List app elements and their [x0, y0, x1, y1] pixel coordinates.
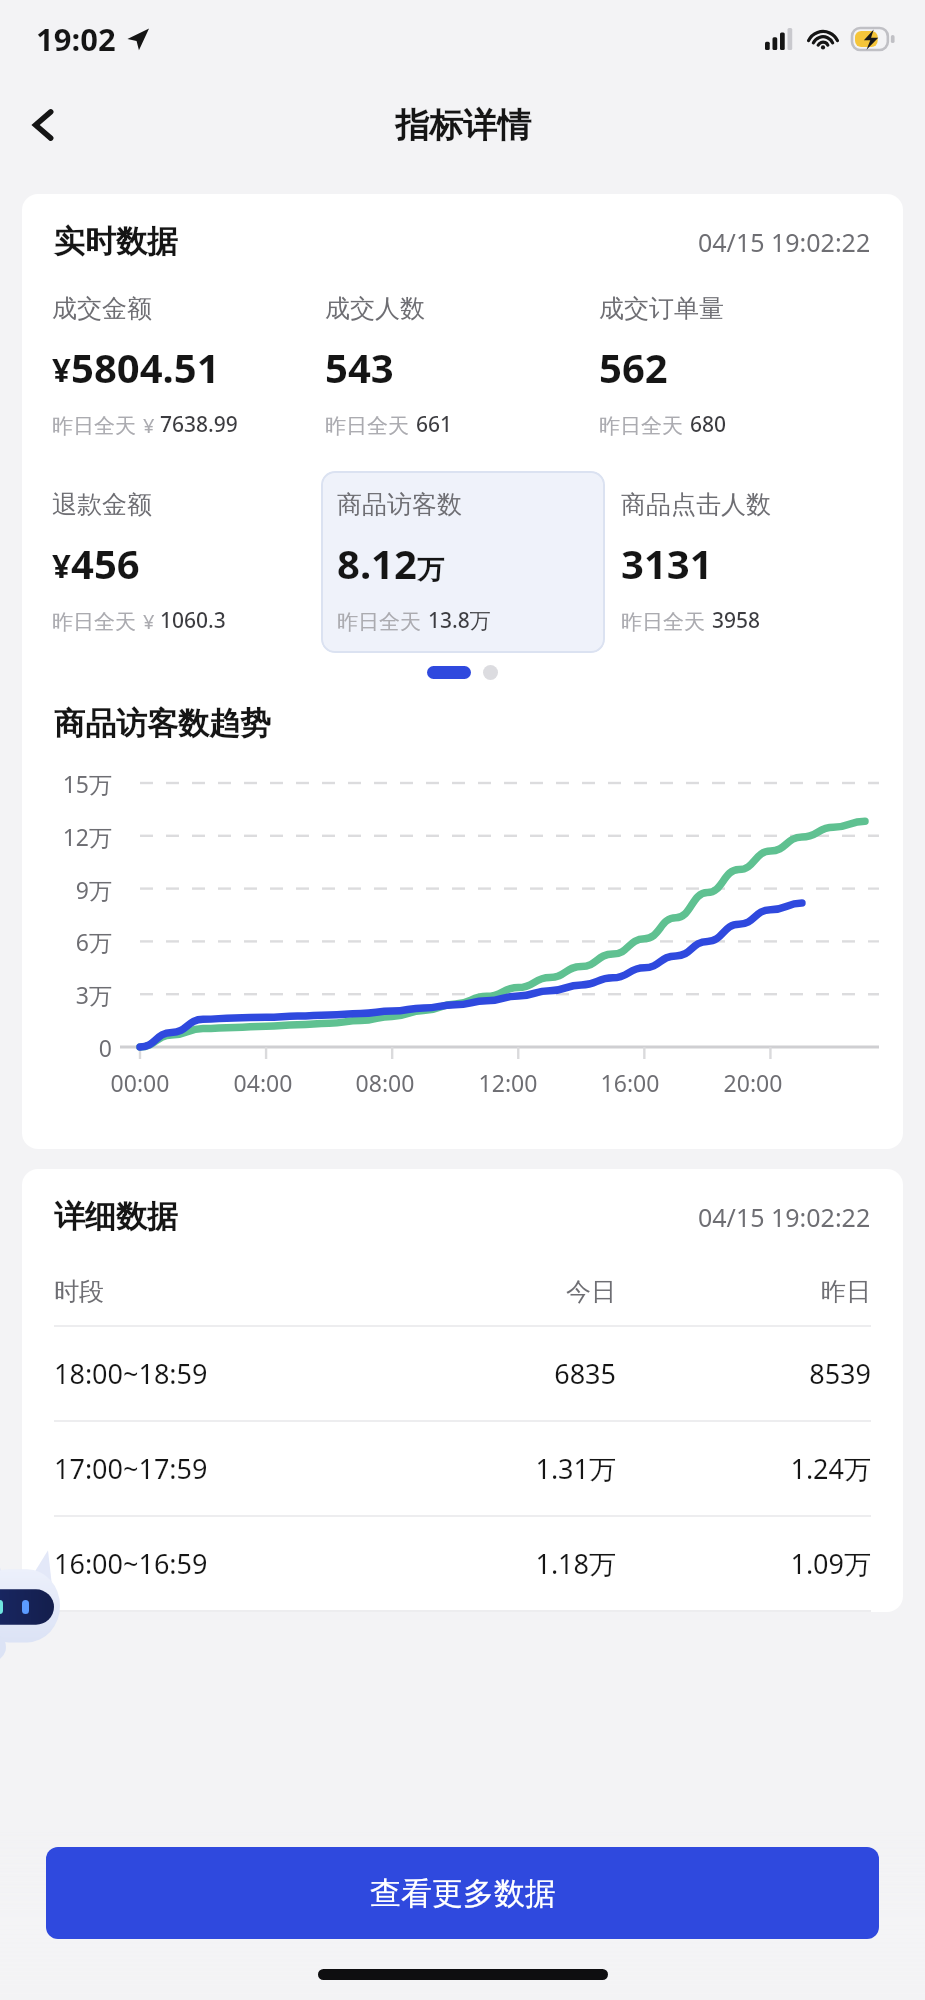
- button[interactable]: 成交订单量: [599, 275, 873, 457]
- staticText: 12:00: [463, 1067, 553, 1098]
- staticText: 19:02: [36, 18, 116, 60]
- button[interactable]: 成交金额: [52, 275, 325, 457]
- button[interactable]: 退款金额: [52, 471, 305, 653]
- staticText: 08:00: [340, 1067, 430, 1098]
- button[interactable]: 17:00~17:59: [54, 1422, 871, 1515]
- button[interactable]: 16:00~16:59: [54, 1517, 871, 1610]
- staticText: 1.09万: [616, 1545, 871, 1582]
- staticText: 退款金额: [52, 489, 152, 520]
- staticText: 1.31万: [361, 1450, 616, 1487]
- staticText: 543: [325, 340, 394, 394]
- staticText: 13.8万: [428, 606, 491, 635]
- staticText: 00:00: [95, 1067, 185, 1098]
- staticText: 昨日全天: [325, 413, 409, 439]
- other: Assistant: [0, 1548, 70, 1666]
- staticText: 9万: [52, 874, 112, 905]
- staticText: 商品访客数: [337, 489, 462, 520]
- staticText: 04/15 19:02:22: [698, 225, 871, 259]
- staticText: 今日: [361, 1276, 616, 1307]
- staticText: ¥: [143, 412, 155, 439]
- staticText: 16:00~16:59: [54, 1545, 361, 1582]
- staticText: ¥: [52, 543, 71, 588]
- staticText: 昨日: [616, 1276, 871, 1307]
- staticText: 5804.51: [71, 340, 220, 394]
- staticText: 昨日全天: [52, 413, 136, 439]
- button[interactable]: Back: [14, 95, 74, 155]
- staticText: 12万: [52, 821, 112, 852]
- staticText: 3958: [712, 606, 761, 635]
- button[interactable]: 成交人数: [325, 275, 599, 457]
- staticText: 1.18万: [361, 1545, 616, 1582]
- staticText: 详细数据: [54, 1197, 178, 1236]
- staticText: 昨日全天: [599, 413, 683, 439]
- staticText: 成交订单量: [599, 293, 724, 324]
- staticText: 1060.3: [160, 606, 226, 635]
- button[interactable]: 商品点击人数: [621, 471, 873, 653]
- staticText: 3万: [52, 979, 112, 1010]
- staticText: 成交人数: [325, 293, 425, 324]
- staticText: 18:00~18:59: [54, 1355, 361, 1392]
- staticText: 3131: [621, 536, 713, 590]
- staticText: 04:00: [218, 1067, 308, 1098]
- staticText: 17:00~17:59: [54, 1450, 361, 1487]
- staticText: 16:00: [585, 1067, 675, 1098]
- staticText: ¥: [52, 347, 71, 392]
- staticText: ¥: [143, 608, 155, 635]
- staticText: 指标详情: [395, 104, 531, 147]
- staticText: 6835: [361, 1355, 616, 1392]
- staticText: 万: [417, 553, 444, 587]
- staticText: 时段: [54, 1276, 361, 1307]
- staticText: 实时数据: [54, 222, 178, 261]
- staticText: 562: [599, 340, 668, 394]
- staticText: 04/15 19:02:22: [698, 1200, 871, 1234]
- staticText: 8539: [616, 1355, 871, 1392]
- button[interactable]: 商品访客数: [321, 471, 605, 653]
- staticText: 昨日全天: [52, 609, 136, 635]
- staticText: 6万: [52, 926, 112, 957]
- staticText: 商品点击人数: [621, 489, 771, 520]
- button[interactable]: 18:00~18:59: [54, 1327, 871, 1420]
- staticText: 商品访客数趋势: [54, 704, 271, 743]
- staticText: 15万: [52, 768, 112, 799]
- staticText: 20:00: [708, 1067, 798, 1098]
- staticText: 8.12: [337, 536, 417, 590]
- staticText: 昨日全天: [621, 609, 705, 635]
- staticText: 成交金额: [52, 293, 152, 324]
- staticText: 661: [416, 410, 453, 439]
- staticText: 680: [690, 410, 727, 439]
- staticText: 456: [71, 536, 140, 590]
- staticText: 查看更多数据: [370, 1874, 556, 1913]
- staticText: 1.24万: [616, 1450, 871, 1487]
- button[interactable]: 查看更多数据: [46, 1847, 879, 1939]
- staticText: 0: [52, 1032, 112, 1063]
- staticText: 7638.99: [160, 410, 238, 439]
- staticText: 昨日全天: [337, 609, 421, 635]
